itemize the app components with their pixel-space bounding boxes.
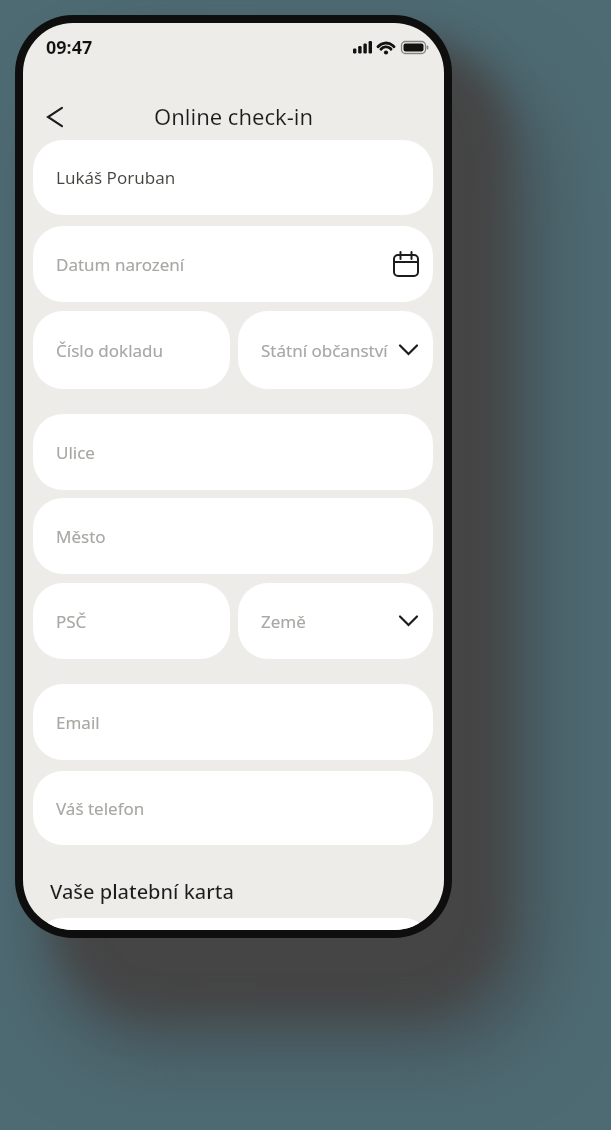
button[interactable]: Číslo dokladu [33,311,230,389]
staticText: Váš telefon [56,797,145,820]
button[interactable] [33,95,77,139]
staticText: Lukáš Poruban [56,166,176,189]
button[interactable]: PSČ [33,583,230,659]
button[interactable]: Ulice [33,414,433,490]
staticText: Ulice [56,441,95,464]
button[interactable]: Váš telefon [33,771,433,845]
staticText: Email [56,711,100,734]
staticText: Číslo dokladu [56,339,164,362]
staticText: Země [261,610,306,633]
staticText: Vaše platební karta [50,878,234,905]
staticText: PSČ [56,610,87,633]
staticText: Datum narození [56,253,185,276]
button[interactable]: Státní občanství [238,311,433,389]
button[interactable]: Země [238,583,433,659]
staticText: Město [56,525,106,548]
staticText: Online check-in [154,101,314,131]
button[interactable]: Město [33,498,433,574]
button[interactable]: Lukáš Poruban [33,140,433,215]
staticText: 09:47 [46,35,93,60]
button[interactable]: Datum narození [33,226,433,302]
staticText: Státní občanství [261,339,388,362]
button[interactable]: Email [33,684,433,760]
